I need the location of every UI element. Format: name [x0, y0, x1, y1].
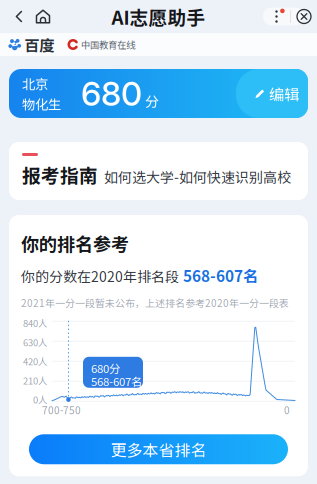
staticText: 你的排名参考: [21, 230, 129, 256]
staticText: 420人: [23, 354, 47, 368]
staticText: 中国教育在线: [81, 38, 135, 51]
staticText: 物化生: [22, 94, 61, 113]
button[interactable]: 编辑: [236, 69, 308, 118]
staticText: 680分: [91, 360, 120, 376]
staticText: 680: [81, 73, 142, 114]
staticText: 630人: [23, 335, 47, 349]
staticText: 700-750: [42, 403, 81, 417]
staticText: 如何选大学-如何快速识别高校: [104, 166, 291, 187]
button[interactable]: 更多本省排名: [29, 434, 288, 464]
staticText: AI志愿助手: [111, 3, 205, 30]
staticText: 北京: [22, 74, 48, 93]
staticText: 更多本省排名: [110, 438, 206, 461]
staticText: 百度: [24, 33, 54, 56]
button[interactable]: More options: [263, 5, 290, 27]
staticText: 分: [145, 90, 159, 111]
staticText: 0: [284, 403, 290, 417]
button[interactable]: Home: [30, 2, 56, 30]
staticText: 840人: [23, 316, 47, 330]
staticText: 你的分数在2020年排名段: [21, 266, 179, 286]
staticText: 0人: [33, 393, 47, 406]
staticText: 2021年一分一段暂未公布，上述排名参考2020年一分一段表: [21, 295, 289, 310]
staticText: 568-607名: [91, 373, 142, 389]
button[interactable]: Close: [291, 5, 317, 27]
button[interactable]: Back: [8, 2, 30, 30]
staticText: 报考指南: [22, 161, 98, 188]
staticText: 568-607名: [183, 264, 258, 286]
staticText: 编辑: [269, 82, 299, 105]
staticText: 210人: [23, 374, 47, 387]
button[interactable]: 报考指南: [9, 142, 308, 200]
